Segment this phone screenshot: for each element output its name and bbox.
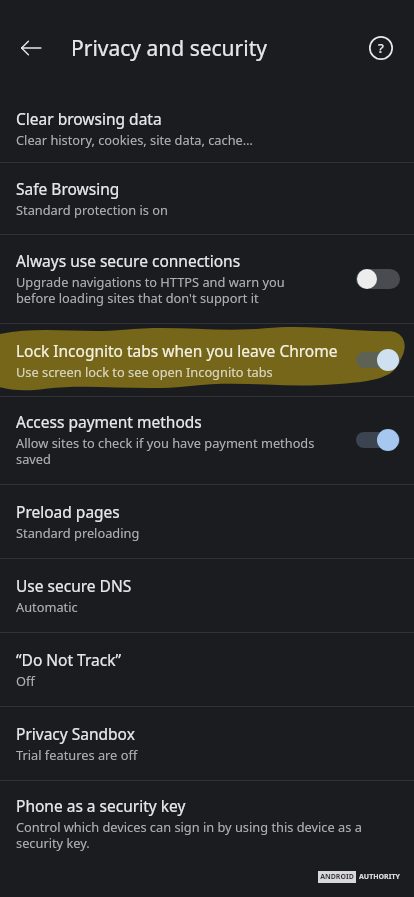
button[interactable]: Safe Browsing [0, 163, 414, 234]
button[interactable]: “Do Not Track” [0, 633, 414, 706]
staticText: Automatic [16, 598, 78, 615]
staticText: Standard preloading [16, 524, 140, 541]
staticText: Use screen lock to see open Incognito ta… [16, 363, 273, 380]
staticText: AUTHORITY [359, 872, 400, 882]
button[interactable]: Clear browsing data [0, 96, 414, 162]
staticText: “Do Not Track” [16, 649, 121, 670]
staticText: ? [378, 39, 384, 57]
staticText: Safe Browsing [16, 178, 120, 199]
staticText: Always use secure connections [16, 250, 241, 271]
button[interactable]: Help [360, 27, 402, 69]
staticText: Clear history, cookies, site data, cache… [16, 131, 253, 148]
button[interactable]: Preload pages [0, 485, 414, 558]
button[interactable]: Lock Incognito tabs when you leave Chrom… [0, 324, 414, 396]
staticText: Control which devices can sign in by usi… [16, 818, 362, 852]
staticText: Trial features are off [16, 746, 138, 763]
button[interactable]: Back [10, 27, 52, 69]
button[interactable]: Use secure DNS [0, 559, 414, 632]
staticText: Allow sites to check if you have payment… [16, 434, 315, 468]
button[interactable]: Privacy Sandbox [0, 707, 414, 780]
button[interactable]: Always use secure connections [0, 235, 414, 323]
staticText: Off [16, 672, 35, 689]
staticText: Use secure DNS [16, 575, 132, 596]
staticText: Upgrade navigations to HTTPS and warn yo… [16, 273, 285, 307]
staticText: Phone as a security key [16, 795, 186, 816]
staticText: ANDROID [320, 872, 354, 882]
button[interactable]: Phone as a security key [0, 781, 414, 866]
staticText: Standard protection is on [16, 201, 168, 218]
button[interactable]: Access payment methods [0, 397, 414, 484]
staticText: Privacy and security [71, 34, 267, 63]
staticText: Access payment methods [16, 411, 202, 432]
staticText: Privacy Sandbox [16, 723, 135, 744]
staticText: Preload pages [16, 501, 120, 522]
staticText: Clear browsing data [16, 108, 162, 129]
staticText: Lock Incognito tabs when you leave Chrom… [16, 340, 338, 361]
